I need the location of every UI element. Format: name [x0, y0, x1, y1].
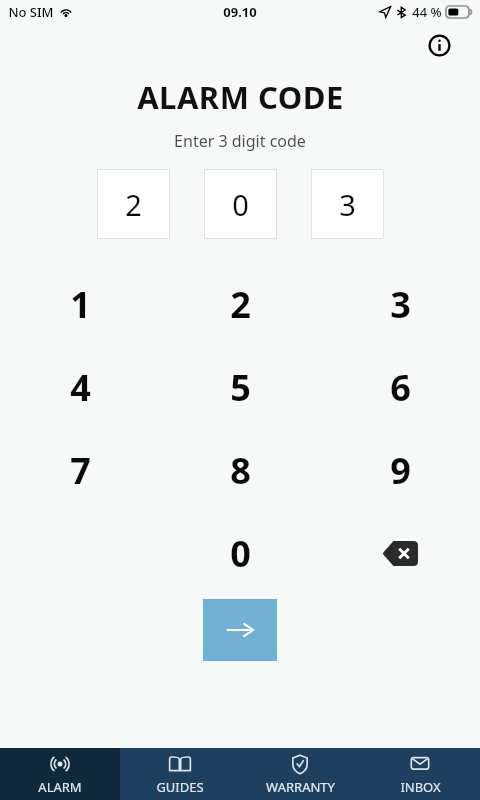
staticText: WARRANTY — [266, 778, 335, 796]
button[interactable]: 3 — [311, 169, 384, 239]
staticText: ALARM CODE — [137, 76, 344, 118]
button[interactable]: Information — [418, 24, 460, 66]
staticText: 09.10 — [223, 3, 257, 21]
button[interactable]: Backspace — [320, 512, 480, 595]
button[interactable]: GUIDES — [120, 748, 240, 800]
button[interactable]: 3 — [320, 263, 480, 346]
button[interactable]: Submit code — [203, 599, 277, 661]
staticText: No SIM — [8, 3, 54, 21]
staticText: 8 — [230, 446, 251, 495]
button[interactable]: ALARM — [0, 748, 120, 800]
staticText: INBOX — [400, 778, 441, 796]
button[interactable]: 5 — [160, 346, 320, 429]
button[interactable]: 9 — [320, 429, 480, 512]
button[interactable]: 6 — [320, 346, 480, 429]
staticText: 5 — [230, 363, 251, 412]
button[interactable]: 2 — [160, 263, 320, 346]
button[interactable]: 7 — [0, 429, 160, 512]
staticText: 3 — [339, 185, 356, 224]
staticText: 6 — [390, 363, 411, 412]
staticText: 7 — [70, 446, 91, 495]
button[interactable]: INBOX — [360, 748, 480, 800]
staticText: ALARM — [38, 778, 82, 796]
staticText: 2 — [230, 280, 251, 329]
staticText: 2 — [125, 185, 142, 224]
staticText: 0 — [232, 185, 249, 224]
staticText: 4 — [70, 363, 91, 412]
button[interactable]: 1 — [0, 263, 160, 346]
button[interactable]: 8 — [160, 429, 320, 512]
staticText: 3 — [390, 280, 411, 329]
staticText: GUIDES — [156, 778, 204, 796]
staticText: 1 — [70, 280, 91, 329]
button[interactable]: 4 — [0, 346, 160, 429]
staticText: 44 % — [412, 3, 442, 21]
button[interactable]: 2 — [97, 169, 170, 239]
staticText: Enter 3 digit code — [174, 130, 306, 152]
staticText: 0 — [230, 529, 251, 578]
button[interactable]: 0 — [204, 169, 277, 239]
staticText: 9 — [390, 446, 411, 495]
button[interactable]: WARRANTY — [240, 748, 360, 800]
button[interactable]: 0 — [160, 512, 320, 595]
